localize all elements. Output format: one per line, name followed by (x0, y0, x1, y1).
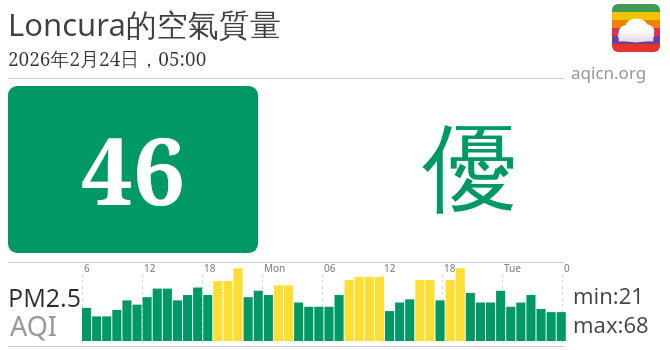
staticText: 2026年2月24日，05:00 (8, 46, 207, 72)
staticText: 6 (84, 261, 90, 275)
staticText: 46 (81, 107, 185, 232)
staticText: 0 (564, 261, 570, 275)
staticText: Loncura的空氣質量 (8, 3, 281, 45)
staticText: AQI (10, 307, 57, 344)
staticText: 06 (324, 261, 336, 275)
staticText: aqicn.org (571, 61, 647, 84)
button[interactable]: aqicn.org logo (612, 4, 660, 52)
staticText: 12 (144, 261, 156, 275)
staticText: 優 (422, 109, 518, 230)
staticText: min:21 (573, 280, 644, 310)
button[interactable]: 46 (8, 86, 258, 253)
staticText: max:68 (573, 309, 649, 339)
staticText: 18 (444, 261, 456, 275)
button[interactable]: 優 (380, 86, 560, 253)
button[interactable]: PM2.5 AQI history chart (0, 262, 570, 347)
staticText: PM2.5 (8, 280, 82, 314)
staticText: 12 (384, 261, 396, 275)
staticText: 18 (204, 261, 216, 275)
staticText: Mon (264, 261, 286, 275)
staticText: Tue (504, 261, 521, 275)
